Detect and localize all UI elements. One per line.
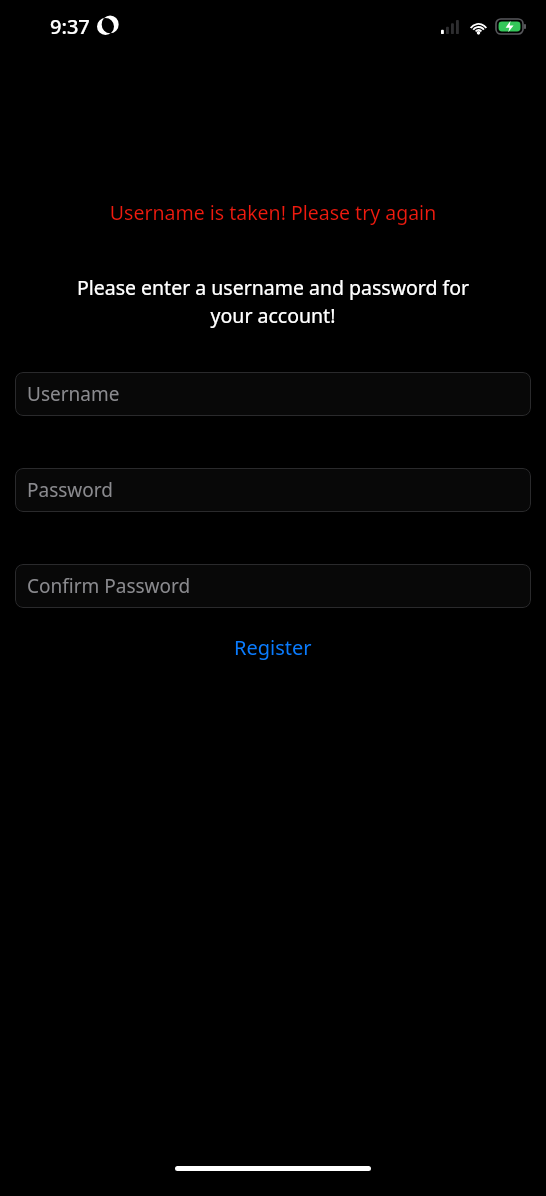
staticText: Register [234,634,312,661]
staticText: 9:37 [50,13,90,40]
staticText: Please enter a username and password for… [56,274,490,329]
staticText: Password [27,477,113,503]
button[interactable]: Password [15,468,531,512]
button[interactable]: Register [0,626,546,669]
button[interactable]: Username [15,372,531,416]
staticText: Username [27,381,120,407]
staticText: Username is taken! Please try again [0,199,546,226]
staticText: Confirm Password [27,573,191,599]
button[interactable]: Confirm Password [15,564,531,608]
